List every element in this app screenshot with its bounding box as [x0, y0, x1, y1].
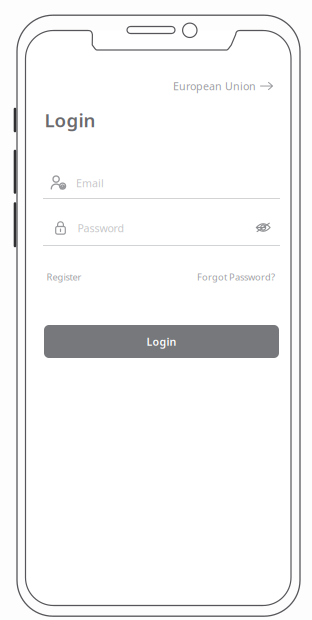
button[interactable]: Login — [44, 325, 279, 358]
button[interactable]: Register — [46, 271, 81, 283]
staticText: Register — [46, 271, 81, 283]
staticText: Forgot Password? — [197, 271, 275, 283]
staticText: Login — [44, 108, 95, 132]
staticText: Password — [77, 221, 124, 235]
staticText: European Union — [173, 79, 256, 93]
button[interactable]: European Union — [173, 79, 273, 93]
button[interactable]: Forgot Password? — [197, 271, 275, 283]
staticText: Login — [146, 334, 176, 349]
button[interactable]: Show password — [255, 222, 271, 234]
staticText: Email — [76, 176, 104, 190]
